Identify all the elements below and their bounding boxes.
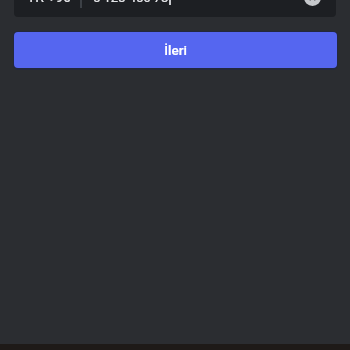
- button[interactable]: TR +90: [14, 0, 336, 17]
- button[interactable]: İleri: [14, 32, 337, 68]
- staticText: TR +90: [27, 0, 72, 5]
- staticText: İleri: [164, 42, 187, 58]
- button[interactable]: Clear phone number: [304, 0, 321, 6]
- staticText: 5 123 456 78: [93, 0, 169, 5]
